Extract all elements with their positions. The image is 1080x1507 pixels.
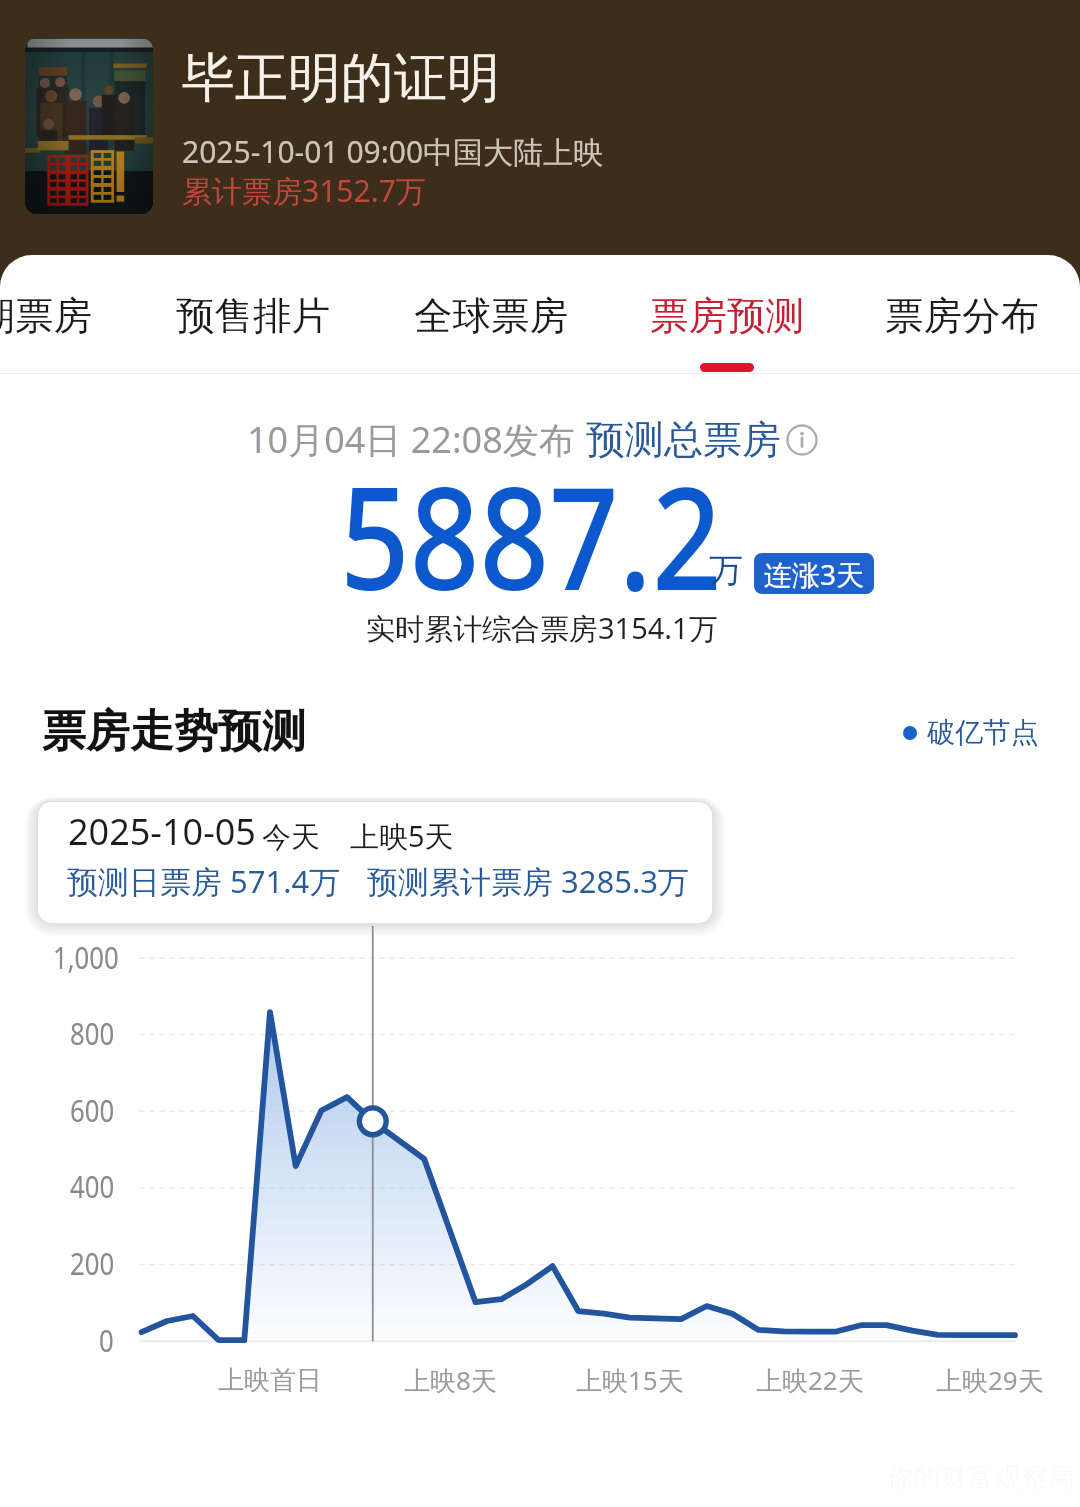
button[interactable]: 连涨3天 xyxy=(754,553,874,594)
button[interactable]: 2025-10-05 xyxy=(38,802,712,923)
staticText: 0 xyxy=(99,1319,114,1361)
button[interactable]: 票房分布 xyxy=(871,266,1053,366)
button[interactable]: 说明 xyxy=(785,423,819,457)
staticText: 预测日票房 571.4万 xyxy=(67,860,341,902)
staticText: 1,000 xyxy=(53,936,119,978)
staticText: 档期票房 xyxy=(0,292,92,341)
staticText: 预售排片 xyxy=(176,292,330,341)
staticText: 200 xyxy=(70,1242,115,1284)
button[interactable]: 电影海报 xyxy=(25,38,153,214)
staticText: 今天 xyxy=(262,819,320,856)
button[interactable]: 档期票房 xyxy=(0,266,106,366)
staticText: 全球票房 xyxy=(414,292,568,341)
staticText: 连涨3天 xyxy=(764,555,865,593)
button[interactable]: 破亿节点 xyxy=(903,715,1039,750)
button[interactable]: 预测总票房 xyxy=(586,415,781,464)
staticText: 破亿节点 xyxy=(927,715,1039,750)
staticText: 5887.2 xyxy=(340,438,722,631)
staticText: 2025-10-01 09:00中国大陆上映 xyxy=(182,131,604,172)
button[interactable]: 票房预测 xyxy=(636,266,818,366)
staticText: 毕正明的证明 xyxy=(182,45,500,112)
staticText: 万 xyxy=(709,549,743,592)
staticText: 800 xyxy=(70,1012,115,1054)
staticText: 票房预测 xyxy=(650,292,804,341)
staticText: 2025-10-05 xyxy=(68,807,256,856)
staticText: 上映15天 xyxy=(576,1362,684,1398)
staticText: 上映5天 xyxy=(350,816,454,856)
staticText: 实时累计综合票房3154.1万 xyxy=(366,608,718,648)
staticText: 上映首日 xyxy=(218,1364,322,1397)
staticText: 票房走势预测 xyxy=(42,704,306,759)
staticText: 票房分布 xyxy=(885,292,1039,341)
staticText: 600 xyxy=(70,1089,115,1131)
button[interactable]: 全球票房 xyxy=(400,266,582,366)
button[interactable]: 预售排片 xyxy=(162,266,344,366)
staticText: 上映29天 xyxy=(936,1362,1044,1398)
staticText: 400 xyxy=(70,1165,115,1207)
staticText: 上映22天 xyxy=(756,1362,864,1398)
staticText: 预测累计票房 3285.3万 xyxy=(367,860,690,902)
staticText: 10月04日 22:08发布 xyxy=(247,415,575,464)
staticText: 累计票房3152.7万 xyxy=(182,170,426,211)
staticText: 上映8天 xyxy=(404,1362,497,1398)
